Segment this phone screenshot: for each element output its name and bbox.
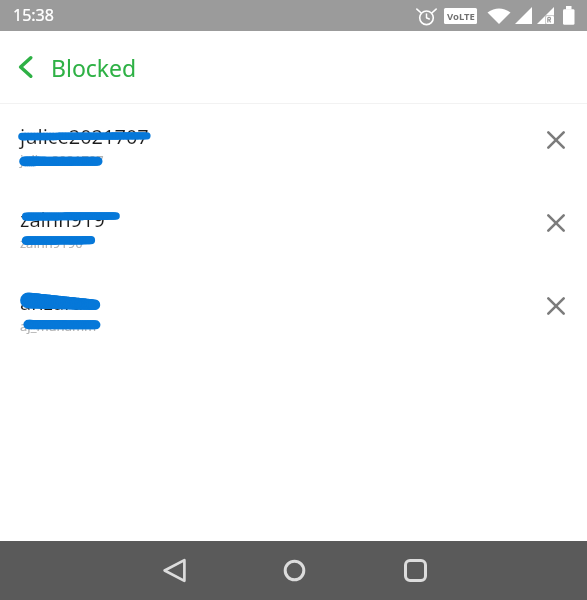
button[interactable]: julice2021707: [0, 104, 587, 187]
staticText: ahzara: [20, 289, 84, 316]
button[interactable]: Unblock: [523, 107, 587, 173]
button[interactable]: Back: [134, 541, 214, 600]
button[interactable]: Recent apps: [375, 541, 455, 600]
button[interactable]: Unblock: [523, 273, 587, 339]
staticText: 15:38: [13, 4, 54, 26]
staticText: julice2021707: [20, 123, 149, 150]
staticText: aj_muhamm: [20, 317, 97, 335]
button[interactable]: Back to previous screen: [0, 31, 587, 103]
staticText: VoLTE: [447, 10, 475, 23]
staticText: Blocked: [51, 52, 137, 83]
button[interactable]: zainn919: [0, 187, 587, 270]
staticText: zainn919: [20, 206, 105, 233]
button[interactable]: ahzara: [0, 270, 587, 353]
button[interactable]: Home: [254, 541, 334, 600]
staticText: julice2021707: [20, 151, 104, 169]
staticText: zainn9190: [20, 234, 83, 252]
button[interactable]: Unblock: [523, 190, 587, 256]
button[interactable]: Back: [0, 31, 51, 103]
